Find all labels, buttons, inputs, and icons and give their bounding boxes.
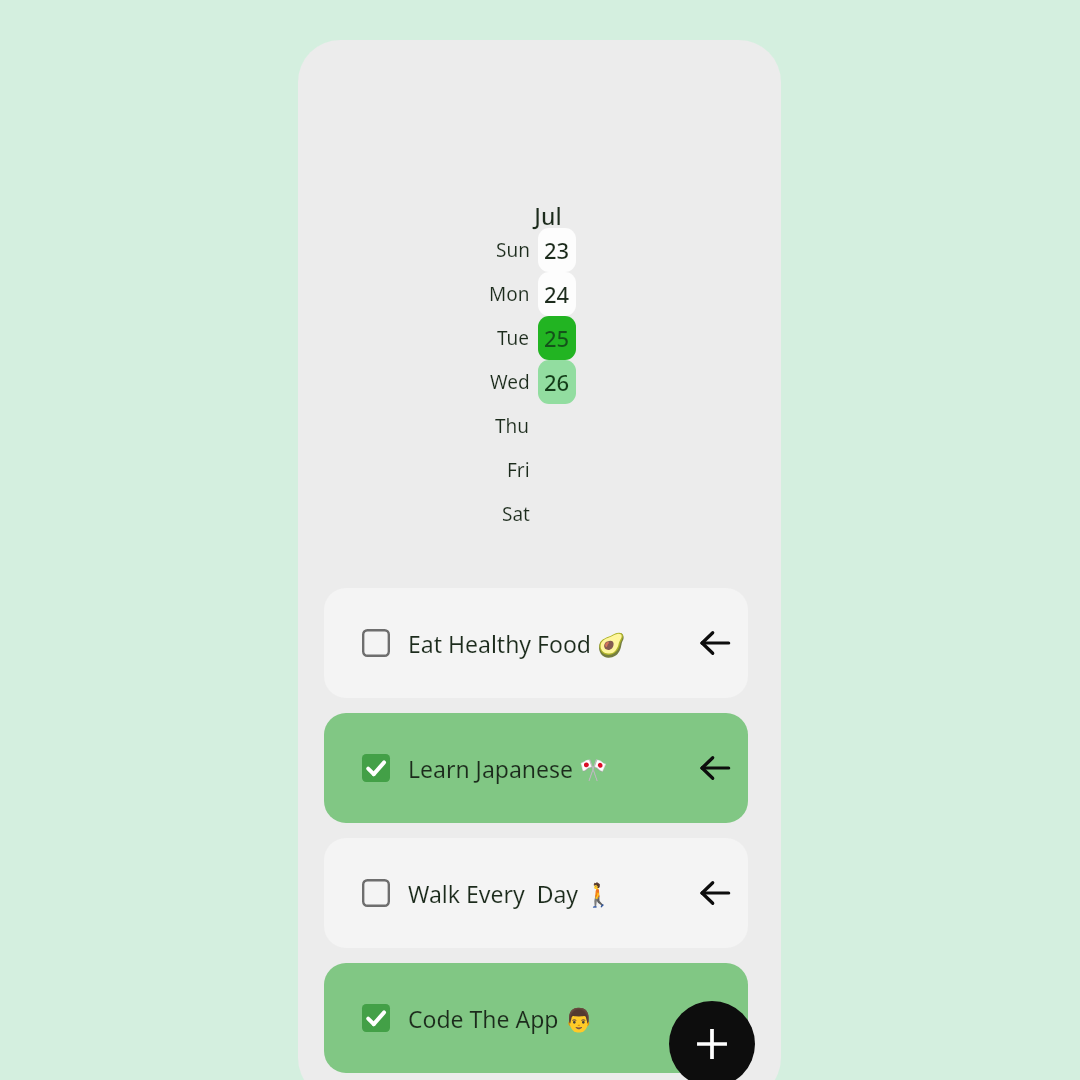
- button[interactable]: Mark complete: [362, 879, 390, 907]
- button[interactable]: Back: [696, 749, 734, 787]
- button[interactable]: Mark complete: [362, 629, 390, 657]
- staticText: Thu: [495, 413, 530, 439]
- button[interactable]: 23: [538, 228, 576, 272]
- button[interactable]: Mark incomplete: [324, 713, 748, 823]
- staticText: Mon: [489, 281, 530, 307]
- staticText: Jul: [534, 200, 562, 231]
- button[interactable]: Add task: [669, 1001, 755, 1080]
- button[interactable]: Mark complete: [324, 588, 748, 698]
- button[interactable]: Mark complete: [324, 838, 748, 948]
- staticText: Learn Japanese 🎌: [408, 753, 608, 784]
- staticText: Tue: [497, 325, 530, 351]
- button[interactable]: Back: [696, 874, 734, 912]
- staticText: 26: [544, 367, 570, 397]
- button[interactable]: Back: [696, 624, 734, 662]
- button[interactable]: Mark incomplete: [324, 963, 748, 1073]
- staticText: Sat: [502, 501, 530, 527]
- staticText: Sun: [496, 237, 530, 263]
- staticText: Code The App 👨: [408, 1003, 594, 1034]
- staticText: Walk Every Day 🚶: [408, 878, 613, 909]
- staticText: Fri: [507, 457, 530, 483]
- staticText: 25: [544, 323, 570, 353]
- staticText: Wed: [490, 369, 530, 395]
- button[interactable]: Mark incomplete: [362, 754, 390, 782]
- staticText: 23: [544, 235, 570, 265]
- button[interactable]: 24: [538, 272, 576, 316]
- button[interactable]: 26: [538, 360, 576, 404]
- staticText: 24: [544, 279, 570, 309]
- button[interactable]: 25: [538, 316, 576, 360]
- staticText: Eat Healthy Food 🥑: [408, 628, 626, 659]
- button[interactable]: Back: [696, 999, 734, 1037]
- button[interactable]: Mark incomplete: [362, 1004, 390, 1032]
